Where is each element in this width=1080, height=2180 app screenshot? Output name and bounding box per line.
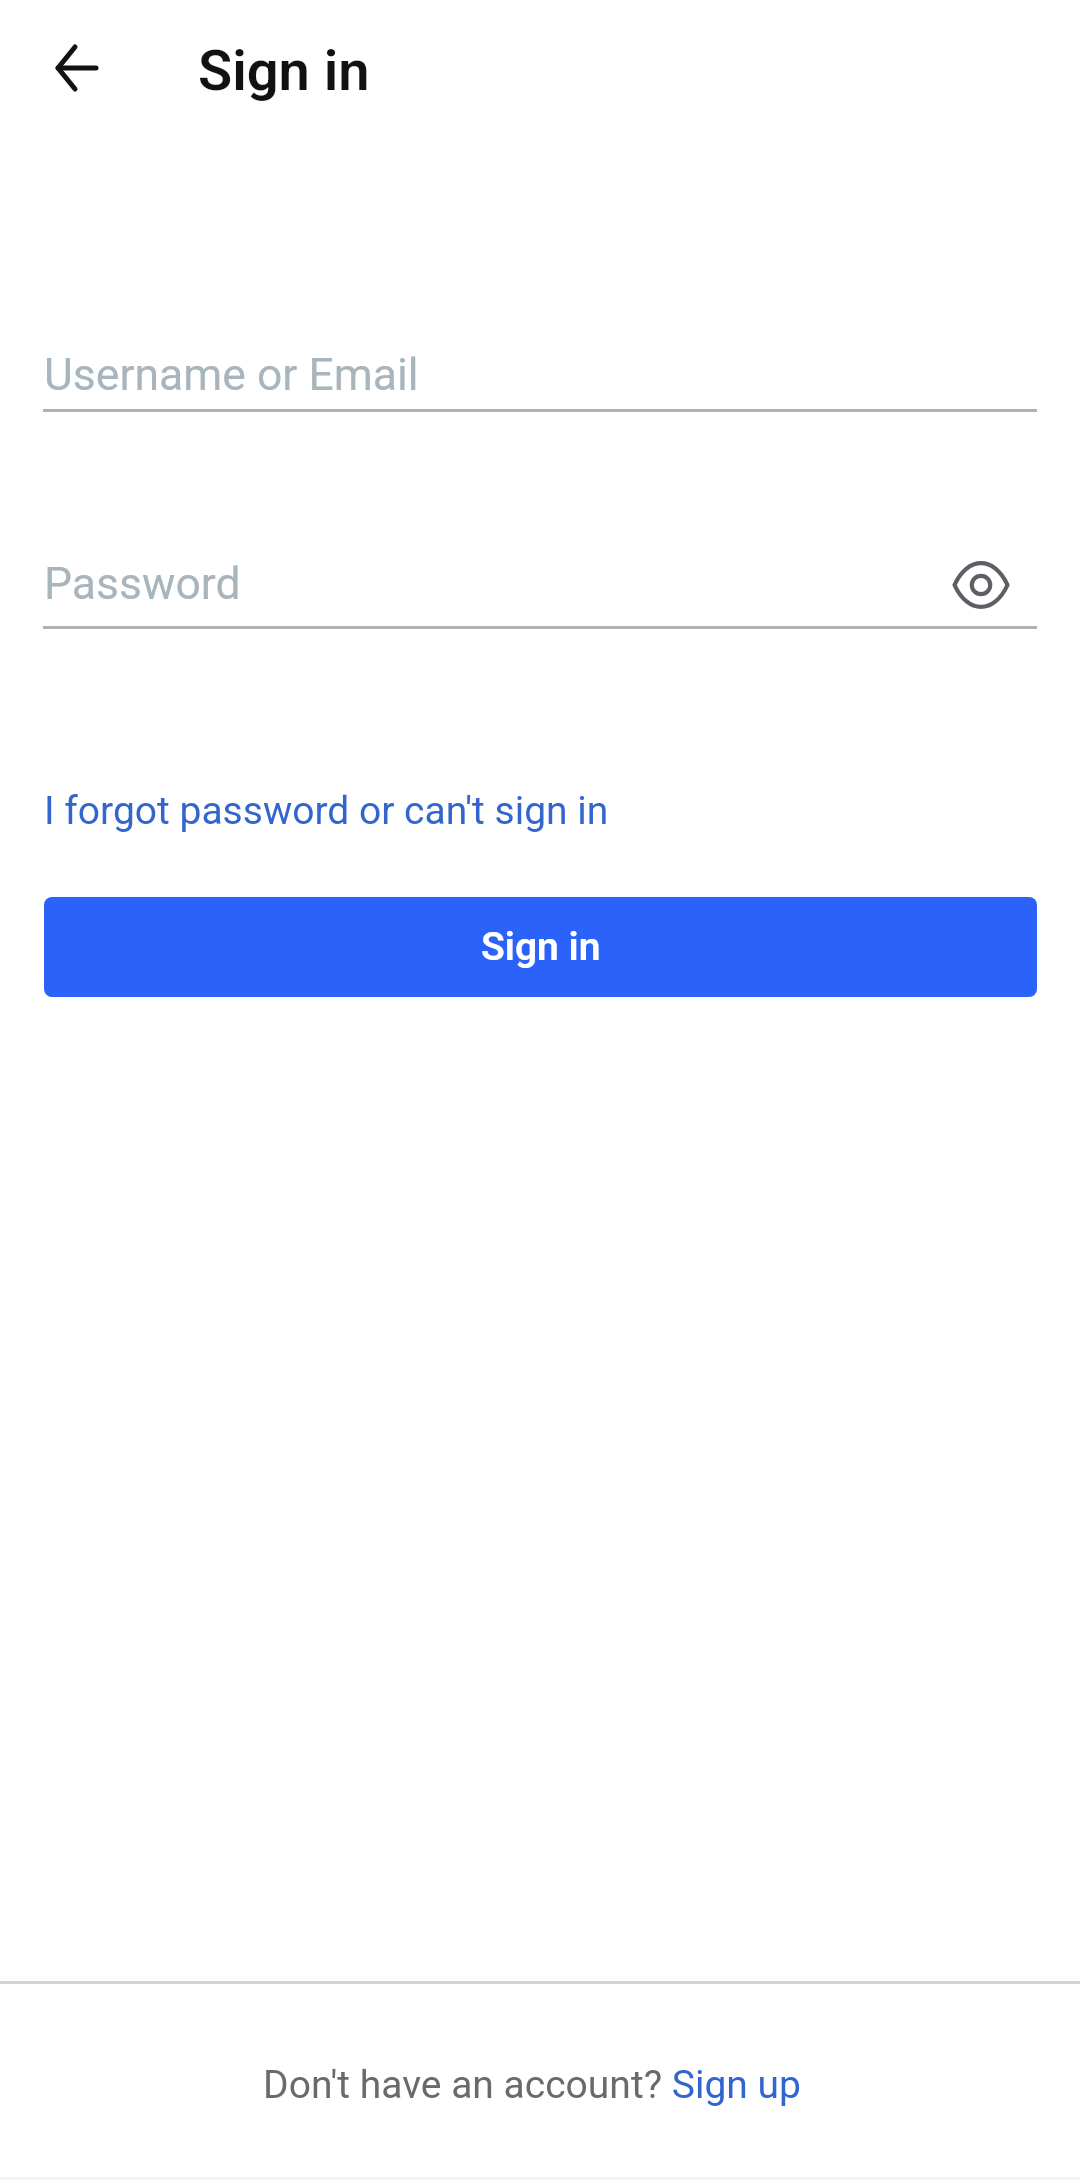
staticText: Sign in xyxy=(481,924,601,970)
button[interactable]: I forgot password or can't sign in xyxy=(44,788,609,834)
staticText: Password xyxy=(44,558,241,610)
button[interactable]: Back xyxy=(35,26,119,110)
staticText: I forgot password or can't sign in xyxy=(44,788,609,834)
button[interactable]: Sign in xyxy=(44,897,1037,997)
staticText: Don't have an account? Sign up xyxy=(263,2062,801,2108)
staticText: Sign in xyxy=(198,38,370,104)
staticText: Username or Email xyxy=(44,349,419,401)
button[interactable]: Don't have an account? Sign up xyxy=(263,2062,801,2108)
button[interactable]: Show password xyxy=(948,552,1014,618)
